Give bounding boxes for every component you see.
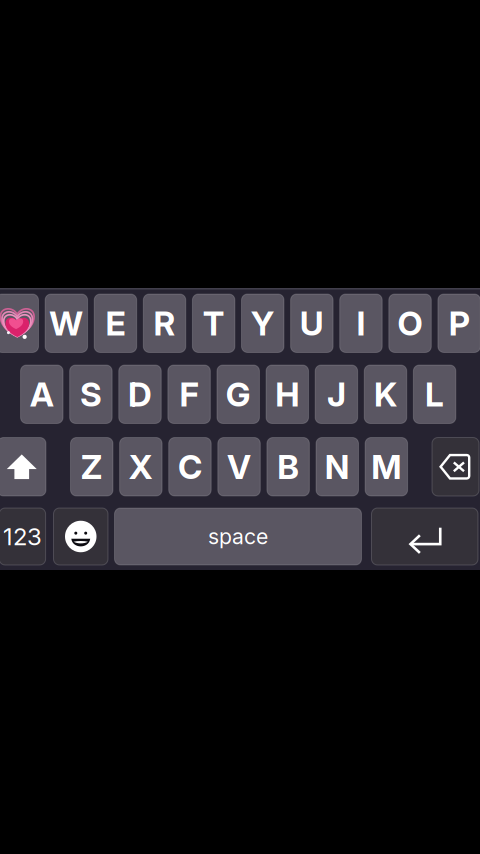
button[interactable]: O — [389, 294, 431, 352]
button[interactable]: J — [315, 365, 358, 423]
staticText: U — [300, 303, 324, 343]
staticText: A — [30, 374, 54, 414]
staticText: H — [275, 374, 299, 414]
button[interactable]: N — [316, 437, 358, 496]
button[interactable]: space — [114, 508, 361, 565]
button[interactable]: F — [168, 365, 210, 423]
staticText: D — [128, 374, 152, 414]
button[interactable]: P — [438, 294, 480, 352]
button[interactable]: Z — [70, 437, 113, 496]
staticText: V — [227, 447, 251, 487]
button[interactable]: Growing heart emoji — [0, 294, 38, 352]
staticText: J — [327, 374, 346, 414]
button[interactable]: S — [70, 365, 112, 423]
button[interactable]: W — [45, 294, 88, 352]
staticText: N — [325, 447, 350, 487]
staticText: Z — [81, 447, 103, 487]
button[interactable]: U — [291, 294, 333, 352]
staticText: W — [49, 303, 83, 343]
staticText: M — [371, 447, 401, 487]
button[interactable]: X — [120, 437, 162, 496]
button[interactable]: D — [119, 365, 161, 423]
button[interactable]: K — [364, 365, 407, 423]
staticText: 123 — [3, 522, 42, 551]
button[interactable]: 123 — [0, 508, 46, 565]
staticText: E — [105, 303, 125, 343]
button[interactable]: C — [169, 437, 211, 496]
button[interactable]: I — [340, 294, 382, 352]
staticText: P — [449, 303, 470, 343]
button[interactable]: B — [267, 437, 309, 496]
staticText: Y — [251, 303, 275, 343]
staticText: T — [203, 303, 225, 343]
staticText: R — [154, 303, 176, 343]
button[interactable]: M — [365, 437, 408, 496]
staticText: C — [178, 447, 202, 487]
button[interactable]: L — [413, 365, 456, 423]
staticText: X — [129, 447, 153, 487]
button[interactable]: Delete — [432, 437, 479, 496]
staticText: B — [277, 447, 299, 487]
button[interactable]: Emoji keyboard — [53, 508, 108, 565]
button[interactable]: E — [94, 294, 137, 352]
button[interactable]: Return — [371, 508, 478, 565]
button[interactable]: V — [218, 437, 260, 496]
button[interactable]: T — [192, 294, 235, 352]
button[interactable]: A — [21, 365, 63, 423]
button[interactable]: H — [266, 365, 309, 423]
button[interactable]: Y — [241, 294, 284, 352]
staticText: S — [80, 374, 102, 414]
staticText: space — [208, 524, 268, 549]
button[interactable]: G — [217, 365, 259, 423]
button[interactable]: R — [143, 294, 186, 352]
staticText: F — [180, 374, 199, 414]
staticText: G — [226, 374, 251, 414]
staticText: I — [356, 303, 365, 343]
staticText: L — [425, 374, 444, 414]
button[interactable]: Shift — [0, 437, 46, 496]
staticText: O — [398, 303, 423, 343]
staticText: K — [374, 374, 397, 414]
